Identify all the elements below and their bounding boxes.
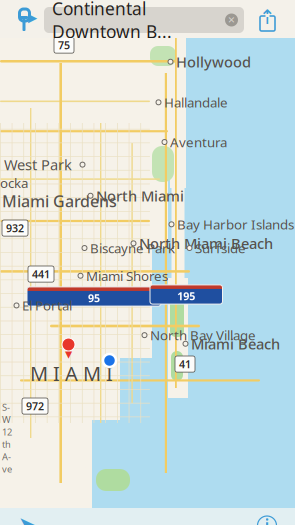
staticText: ▼	[65, 349, 72, 360]
staticText: ➤	[17, 511, 38, 525]
staticText: Surfside	[195, 239, 246, 257]
staticText: 95	[88, 291, 100, 305]
staticText: ▶	[28, 11, 37, 24]
staticText: El Portal	[22, 297, 72, 314]
staticText: West Park	[4, 155, 72, 174]
staticText: Biscayne Park	[90, 239, 175, 257]
button[interactable]: Share	[244, 3, 291, 37]
staticText: 932	[6, 221, 24, 235]
staticText: Miami Beach	[191, 334, 280, 353]
staticText: 195	[177, 289, 195, 303]
staticText: SW 12th Ave	[2, 401, 12, 475]
staticText: Hallandale	[164, 93, 228, 111]
staticText: ocka	[0, 174, 28, 192]
staticText: M I A M I	[30, 360, 113, 387]
staticText: Continental Downtown B...	[52, 0, 172, 43]
staticText: ↑	[259, 6, 276, 28]
staticText: Aventura	[170, 133, 227, 151]
button[interactable]: Continental Downtown B...	[44, 7, 244, 33]
staticText: Miami Shores	[86, 267, 168, 285]
staticText: Bay Harbor Islands	[177, 215, 294, 233]
staticText: 11:30 PM	[111, 0, 174, 2]
staticText: 75	[58, 38, 70, 52]
button[interactable]: Directions	[4, 3, 44, 37]
staticText: 41	[179, 357, 191, 371]
staticText: North Miami	[96, 186, 184, 205]
staticText: 972	[26, 399, 44, 413]
staticText: North Bay Village	[150, 326, 256, 344]
staticText: Hollywood	[176, 52, 251, 71]
staticText: North Miami Beach	[139, 234, 273, 253]
button[interactable]: Current Location	[4, 508, 52, 525]
staticText: 441	[32, 267, 50, 281]
button[interactable]: Info	[243, 508, 291, 525]
staticText: Miami Gardens	[2, 190, 117, 212]
staticText: i	[264, 514, 269, 525]
staticText: ✕	[227, 15, 235, 25]
